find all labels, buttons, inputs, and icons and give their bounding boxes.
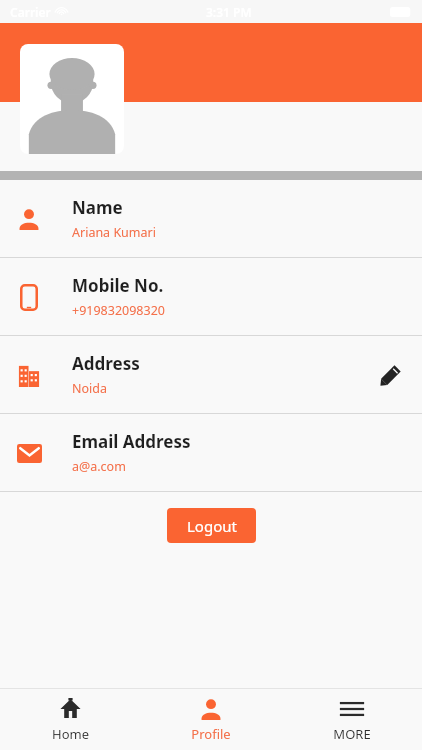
button[interactable]: MORE (281, 690, 422, 750)
staticText: Name (72, 196, 123, 219)
button[interactable]: Home (0, 690, 140, 750)
staticText: Logout (187, 516, 237, 536)
staticText: Address (72, 352, 140, 375)
staticText: 3:31 PM (206, 4, 252, 20)
staticText: a@a.com (72, 458, 126, 475)
button[interactable]: Logout (167, 508, 256, 543)
button[interactable]: Edit (374, 358, 408, 392)
staticText: Carrier (10, 4, 51, 20)
button[interactable]: Name (0, 180, 422, 257)
button[interactable]: Email Address (0, 414, 422, 491)
button[interactable]: Profile photo (20, 44, 124, 154)
staticText: Profile (191, 725, 231, 743)
staticText: +919832098320 (72, 302, 165, 319)
staticText: MORE (333, 725, 371, 743)
staticText: Mobile No. (72, 274, 164, 297)
button[interactable]: Address (0, 336, 422, 413)
staticText: Ariana Kumari (72, 224, 156, 241)
staticText: Home (52, 725, 89, 743)
staticText: Noida (72, 380, 107, 397)
button[interactable]: Profile (140, 690, 281, 750)
button[interactable]: Mobile No. (0, 258, 422, 335)
staticText: Email Address (72, 430, 191, 453)
